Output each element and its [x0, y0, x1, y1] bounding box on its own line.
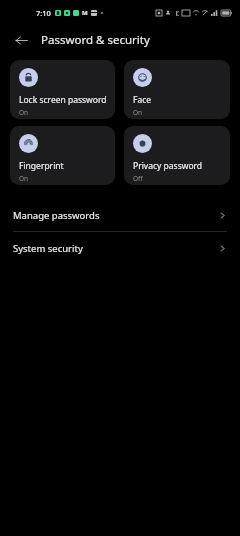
staticText: On: [133, 108, 143, 117]
staticText: On: [19, 174, 29, 183]
staticText: Off: [133, 174, 143, 183]
staticText: System security: [13, 242, 83, 255]
staticText: Fingerprint: [19, 160, 64, 172]
button[interactable]: System security: [0, 232, 240, 264]
button[interactable]: Face: [124, 60, 230, 119]
staticText: Manage passwords: [13, 209, 100, 222]
button[interactable]: Privacy password: [124, 126, 230, 185]
staticText: On: [19, 108, 29, 117]
button[interactable]: Back: [10, 29, 32, 51]
staticText: Face: [133, 94, 152, 106]
button[interactable]: Fingerprint: [10, 126, 115, 185]
staticText: 7:10: [36, 8, 51, 18]
button[interactable]: Manage passwords: [0, 199, 240, 231]
button[interactable]: Lock screen password: [10, 60, 115, 119]
staticText: M: [82, 9, 88, 17]
staticText: Password & security: [41, 32, 150, 48]
staticText: Lock screen password: [19, 94, 107, 106]
staticText: Privacy password: [133, 160, 203, 172]
